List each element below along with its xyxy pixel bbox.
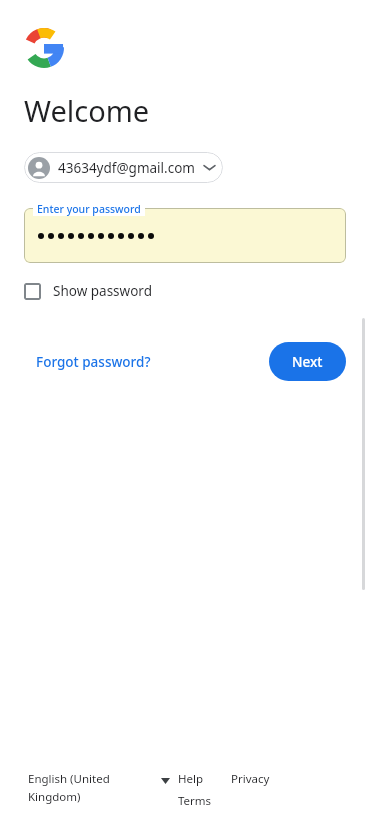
button[interactable]: Show password: [21, 278, 160, 304]
staticText: Terms: [178, 793, 212, 809]
staticText: Forgot password?: [36, 353, 151, 371]
button[interactable]: Next: [269, 342, 346, 381]
button[interactable]: [24, 208, 346, 263]
staticText: Privacy: [231, 771, 270, 787]
staticText: Welcome: [24, 91, 150, 130]
button[interactable]: English (United Kingdom): [28, 771, 178, 804]
staticText: Show password: [53, 282, 152, 300]
staticText: 43634ydf@gmail.com: [58, 159, 195, 177]
button[interactable]: Terms: [178, 793, 212, 809]
staticText: English (United Kingdom): [28, 771, 128, 804]
staticText: Enter your password: [37, 202, 141, 216]
button[interactable]: Privacy: [231, 771, 270, 787]
button[interactable]: 43634ydf@gmail.com: [24, 152, 223, 183]
staticText: Help: [178, 771, 204, 787]
button[interactable]: Forgot password?: [24, 345, 163, 379]
button[interactable]: Help: [178, 771, 204, 787]
staticText: Next: [292, 353, 323, 371]
